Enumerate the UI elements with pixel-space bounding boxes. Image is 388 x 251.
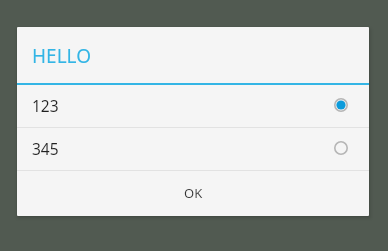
staticText: OK [184, 184, 203, 202]
button[interactable]: OK [17, 171, 369, 216]
other: Select 345 [334, 141, 348, 155]
other: 123 selected [334, 98, 348, 112]
staticText: 345 [32, 138, 59, 159]
staticText: HELLO [32, 43, 92, 69]
button[interactable]: 123 [17, 85, 369, 127]
button[interactable]: 345 [17, 128, 369, 170]
staticText: 123 [32, 95, 59, 116]
